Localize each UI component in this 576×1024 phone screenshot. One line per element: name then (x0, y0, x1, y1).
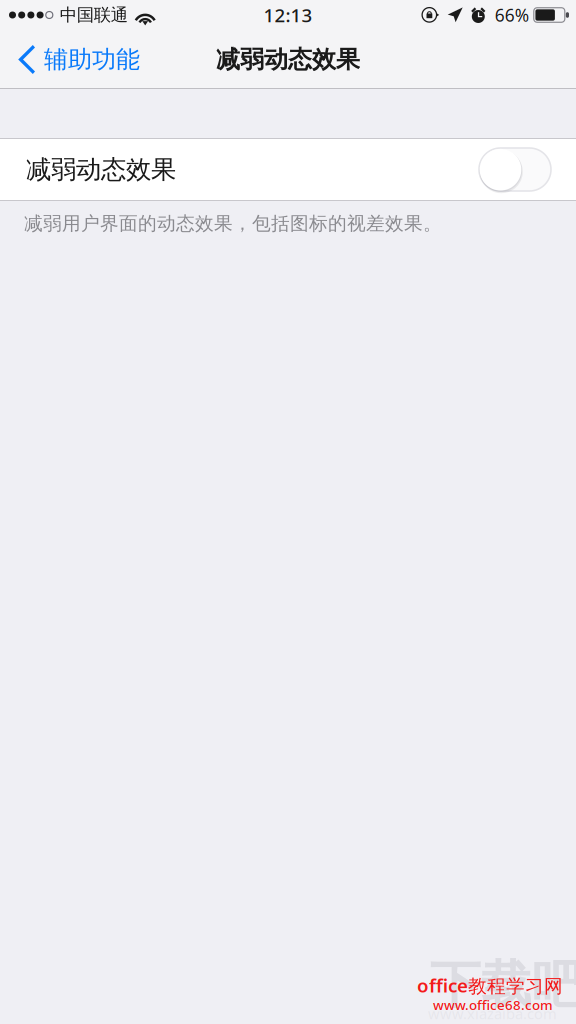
button[interactable]: 减弱动态效果 (0, 138, 576, 201)
staticText: 减弱动态效果 (216, 45, 360, 74)
staticText: office教程学习网 (417, 973, 563, 998)
staticText: www.office68.com (433, 996, 553, 1014)
staticText: 减弱动态效果 (26, 154, 176, 185)
button[interactable]: 辅助功能 (0, 35, 154, 83)
staticText: 减弱用户界面的动态效果，包括图标的视差效果。 (24, 212, 442, 235)
staticText: 下载吧 (430, 954, 576, 1016)
staticText: 中国联通 (60, 4, 128, 26)
staticText: www.xiazaiba.com (428, 1004, 557, 1023)
staticText: 辅助功能 (44, 45, 140, 74)
staticText: 66% (495, 3, 529, 26)
staticText: 12:13 (263, 3, 312, 27)
